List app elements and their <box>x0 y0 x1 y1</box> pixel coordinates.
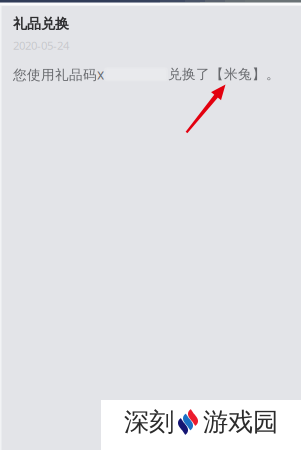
staticText: 游戏园 <box>203 406 278 437</box>
staticText: 您使用礼品码x <box>13 65 104 84</box>
staticText: 深刻 <box>124 406 174 437</box>
staticText: 兑换了【米兔】。 <box>168 66 280 83</box>
staticText: 2020-05-24 <box>13 38 69 53</box>
staticText: 礼品兑换 <box>13 15 69 33</box>
button[interactable]: 礼品兑换 <box>13 0 301 96</box>
